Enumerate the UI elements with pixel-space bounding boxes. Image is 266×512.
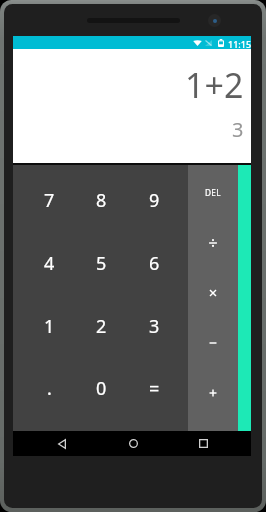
button[interactable]: Back <box>27 431 97 456</box>
staticText: 9 <box>149 188 160 213</box>
staticText: 5 <box>96 251 107 276</box>
staticText: 1 <box>44 314 55 339</box>
button[interactable]: 6 <box>128 232 181 295</box>
button[interactable]: Recents <box>168 431 238 456</box>
button[interactable]: DEL <box>188 167 238 217</box>
button[interactable]: 7 <box>23 169 75 232</box>
button[interactable]: minus <box>188 317 238 367</box>
staticText: = <box>149 376 160 401</box>
staticText: 3 <box>149 314 160 339</box>
button[interactable]: divide <box>188 217 238 267</box>
staticText: 7 <box>44 188 55 213</box>
button[interactable]: 8 <box>75 169 128 232</box>
button[interactable]: = <box>128 357 181 420</box>
button[interactable]: Home <box>98 431 168 456</box>
button[interactable]: 4 <box>23 232 75 295</box>
staticText: 1+2 <box>185 62 244 108</box>
staticText: 6 <box>149 251 160 276</box>
staticText: 2 <box>96 314 107 339</box>
button[interactable]: plus <box>188 367 238 417</box>
button[interactable]: 3 <box>128 295 181 358</box>
staticText: DEL <box>205 187 221 198</box>
staticText: 4 <box>44 251 55 276</box>
button[interactable]: . <box>23 357 75 420</box>
staticText: 0 <box>96 376 107 401</box>
staticText: 3 <box>232 116 244 143</box>
staticText: . <box>47 376 52 401</box>
button[interactable]: 9 <box>128 169 181 232</box>
button[interactable]: 2 <box>75 295 128 358</box>
button[interactable]: 1 <box>23 295 75 358</box>
staticText: 8 <box>96 188 107 213</box>
staticText: 11:15 <box>228 38 252 50</box>
button[interactable]: 5 <box>75 232 128 295</box>
button[interactable]: times <box>188 267 238 317</box>
button[interactable]: 0 <box>75 357 128 420</box>
